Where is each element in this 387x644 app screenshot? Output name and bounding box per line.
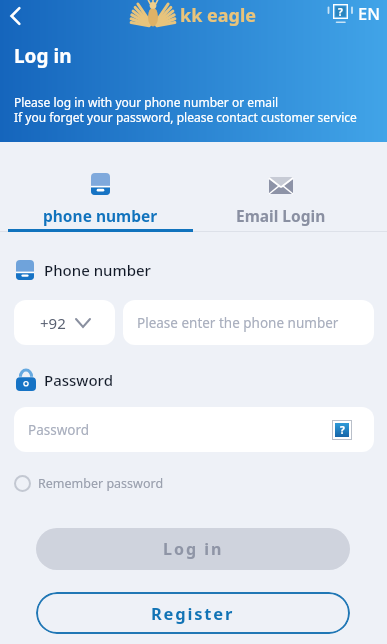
staticText: Password [44, 370, 113, 390]
staticText: phone number [43, 205, 158, 226]
staticText: Please enter the phone number [137, 314, 339, 332]
button[interactable]: Register [36, 592, 350, 634]
button[interactable]: Remember password [14, 475, 164, 492]
staticText: Email Login [236, 205, 326, 226]
button[interactable]: phone number [0, 142, 200, 232]
button[interactable]: +92 [14, 300, 115, 345]
staticText: ? [340, 423, 345, 437]
button[interactable]: ? [333, 4, 348, 19]
button[interactable]: Email Login [200, 142, 362, 232]
staticText: kk eagle [180, 3, 257, 28]
staticText: +92 [40, 313, 66, 333]
button[interactable]: Please enter the phone number [123, 300, 374, 345]
button[interactable]: EN [358, 2, 380, 24]
button[interactable]: ? [332, 420, 352, 440]
button[interactable]: Log in [36, 528, 350, 570]
staticText: Password [28, 421, 90, 439]
staticText: Log in [14, 43, 72, 69]
staticText: Phone number [44, 260, 151, 280]
button[interactable] [2, 2, 30, 30]
staticText: Remember password [38, 475, 164, 492]
staticText: ? [338, 5, 343, 19]
staticText: Log in [163, 538, 224, 560]
staticText: Register [151, 602, 235, 624]
button[interactable]: Password [14, 407, 374, 452]
staticText: Please log in with your phone number or … [14, 94, 357, 125]
